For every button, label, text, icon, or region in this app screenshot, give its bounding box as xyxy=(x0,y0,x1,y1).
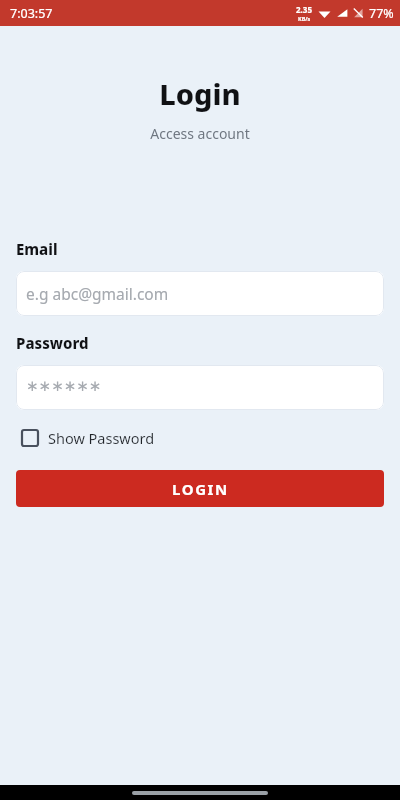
staticText: KB/s xyxy=(298,15,311,22)
staticText: 7:03:57 xyxy=(10,5,53,22)
staticText: ∗∗∗∗∗∗ xyxy=(26,377,102,394)
staticText: Show Password xyxy=(48,428,155,448)
staticText: 77% xyxy=(369,5,394,22)
button[interactable]: LOGIN xyxy=(16,470,384,507)
button[interactable]: e.g abc@gmail.com xyxy=(16,271,384,316)
staticText: Email xyxy=(16,239,58,259)
staticText: 2.35 xyxy=(296,4,312,15)
staticText: Access account xyxy=(0,124,400,143)
staticText: LOGIN xyxy=(172,479,229,499)
button[interactable]: Show Password xyxy=(16,424,155,452)
staticText: Password xyxy=(16,333,89,353)
button[interactable]: ∗∗∗∗∗∗ xyxy=(16,365,384,410)
staticText: e.g abc@gmail.com xyxy=(26,283,169,304)
staticText: Login xyxy=(0,74,400,113)
